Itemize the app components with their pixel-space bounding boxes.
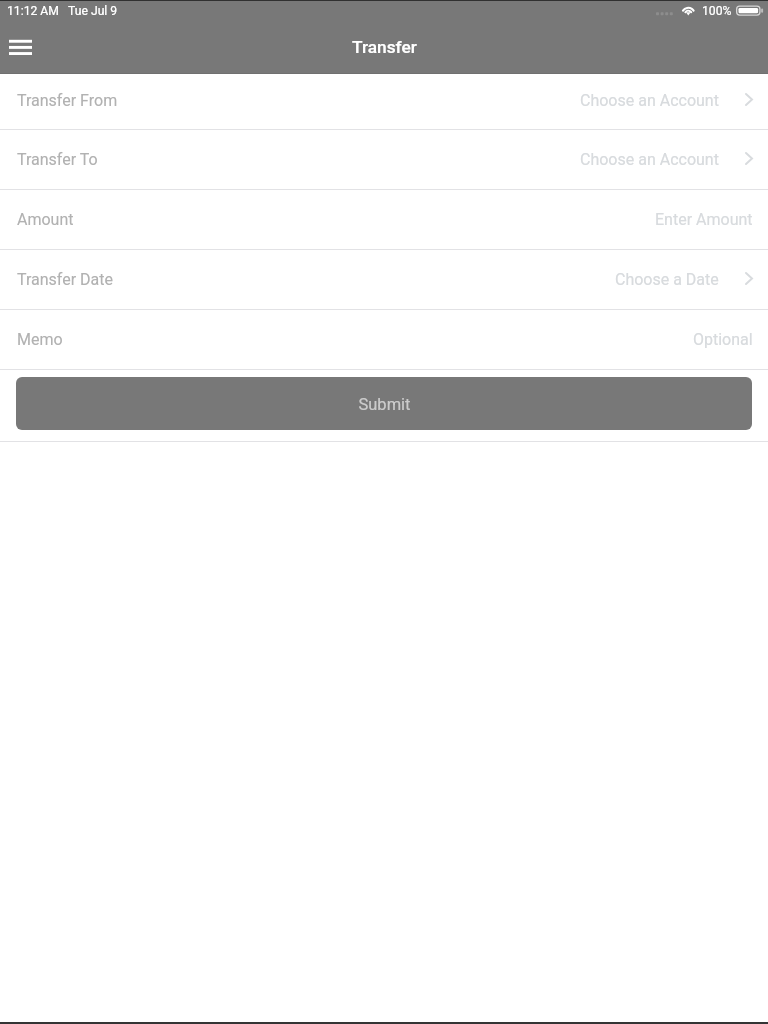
staticText: Transfer From bbox=[17, 91, 118, 110]
button[interactable]: Amount bbox=[0, 190, 768, 249]
staticText: Transfer bbox=[352, 37, 417, 57]
staticText: Enter Amount bbox=[655, 210, 753, 229]
button[interactable]: Transfer To bbox=[0, 130, 768, 189]
staticText: Tue Jul 9 bbox=[68, 4, 118, 18]
staticText: Choose a Date bbox=[615, 270, 719, 289]
staticText: Submit bbox=[358, 395, 411, 414]
staticText: Transfer Date bbox=[17, 270, 114, 289]
button[interactable]: Transfer From bbox=[0, 74, 768, 129]
staticText: Amount bbox=[17, 210, 74, 229]
staticText: Choose an Account bbox=[580, 150, 719, 169]
staticText: Choose an Account bbox=[580, 91, 719, 110]
button[interactable]: Submit bbox=[16, 377, 752, 430]
staticText: 100% bbox=[702, 4, 732, 18]
staticText: Transfer To bbox=[17, 150, 98, 169]
button[interactable]: Open navigation menu bbox=[0, 30, 42, 64]
staticText: Optional bbox=[693, 330, 753, 349]
staticText: Memo bbox=[17, 330, 63, 349]
button[interactable]: Transfer Date bbox=[0, 250, 768, 309]
button[interactable]: Memo bbox=[0, 310, 768, 369]
staticText: 11:12 AM bbox=[7, 4, 59, 18]
